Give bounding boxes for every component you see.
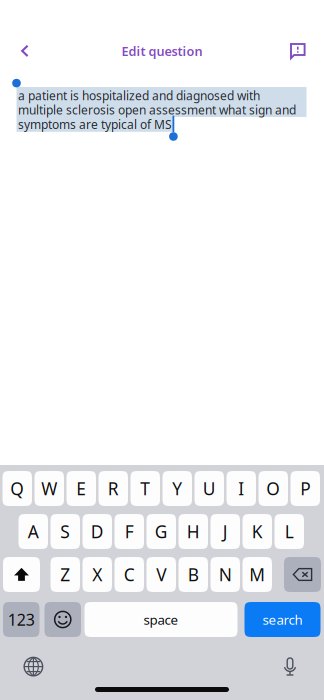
staticText: multiple sclerosis open assessment what …: [18, 102, 296, 118]
staticText: S: [60, 520, 70, 543]
button[interactable]: E: [66, 471, 96, 506]
button[interactable]: 123: [3, 602, 39, 637]
button[interactable]: Emoji keyboard: [44, 602, 81, 637]
button[interactable]: C: [114, 557, 144, 592]
button[interactable]: Next keyboard: [16, 652, 50, 682]
button[interactable]: Q: [2, 471, 32, 506]
staticText: G: [155, 520, 168, 543]
staticText: U: [203, 477, 216, 500]
button[interactable]: R: [98, 471, 128, 506]
button[interactable]: X: [82, 557, 112, 592]
staticText: H: [187, 520, 200, 543]
button[interactable]: H: [178, 514, 208, 549]
button[interactable]: search: [244, 602, 320, 637]
staticText: R: [108, 477, 119, 500]
staticText: L: [285, 520, 294, 543]
staticText: E: [76, 477, 86, 500]
button[interactable]: G: [146, 514, 176, 549]
staticText: X: [92, 563, 102, 586]
button[interactable]: I: [226, 471, 256, 506]
button[interactable]: A: [18, 514, 48, 549]
button[interactable]: D: [82, 514, 112, 549]
staticText: Z: [60, 563, 70, 586]
staticText: symptoms are typical of MS: [18, 116, 172, 132]
staticText: B: [188, 563, 199, 586]
staticText: Q: [10, 477, 24, 500]
staticText: W: [41, 477, 57, 500]
staticText: Y: [172, 477, 182, 500]
button[interactable]: J: [210, 514, 240, 549]
button[interactable]: M: [242, 557, 272, 592]
staticText: search: [262, 611, 302, 628]
button[interactable]: W: [34, 471, 64, 506]
button[interactable]: V: [146, 557, 176, 592]
button[interactable]: P: [290, 471, 320, 506]
staticText: F: [125, 520, 134, 543]
staticText: I: [238, 477, 244, 500]
button[interactable]: Y: [162, 471, 192, 506]
staticText: V: [156, 563, 166, 586]
button[interactable]: Dictation: [273, 652, 307, 682]
staticText: Edit question: [121, 43, 202, 59]
staticText: P: [300, 477, 310, 500]
button[interactable]: B: [178, 557, 208, 592]
staticText: A: [28, 520, 39, 543]
staticText: T: [140, 477, 150, 500]
staticText: O: [266, 477, 280, 500]
staticText: 123: [8, 609, 35, 630]
button[interactable]: N: [210, 557, 240, 592]
staticText: space: [143, 611, 178, 628]
button[interactable]: Z: [50, 557, 80, 592]
staticText: J: [223, 520, 228, 543]
staticText: M: [249, 563, 265, 586]
staticText: N: [219, 563, 232, 586]
button[interactable]: U: [194, 471, 224, 506]
button[interactable]: K: [242, 514, 272, 549]
staticText: K: [252, 520, 263, 543]
button[interactable]: Report a problem: [276, 29, 320, 73]
button[interactable]: Shift: [3, 557, 40, 592]
staticText: D: [91, 520, 104, 543]
button[interactable]: T: [130, 471, 160, 506]
button[interactable]: Delete: [284, 557, 321, 592]
button[interactable]: O: [258, 471, 288, 506]
button[interactable]: Back: [3, 29, 47, 73]
staticText: a patient is hospitalized and diagnosed …: [18, 88, 260, 104]
button[interactable]: space: [84, 602, 237, 637]
staticText: C: [124, 563, 135, 586]
button[interactable]: S: [50, 514, 80, 549]
button[interactable]: F: [114, 514, 144, 549]
button[interactable]: L: [274, 514, 304, 549]
